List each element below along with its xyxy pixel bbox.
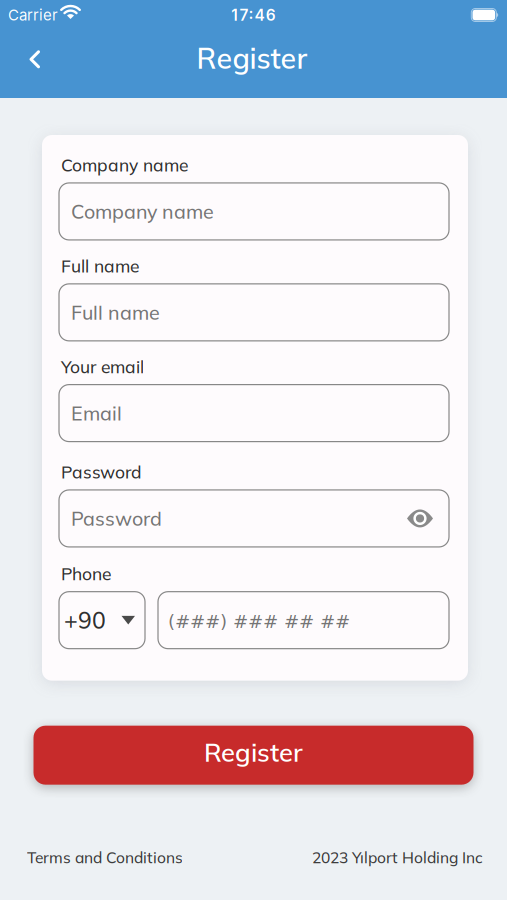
staticText: 17:46 bbox=[231, 6, 276, 24]
staticText: Register bbox=[196, 40, 307, 76]
staticText: Register bbox=[204, 736, 303, 768]
button[interactable]: Company name bbox=[59, 183, 449, 240]
staticText: Full name bbox=[61, 255, 139, 277]
staticText: (###) ### ## ## bbox=[168, 611, 350, 632]
staticText: Your email bbox=[61, 356, 144, 378]
staticText: Password bbox=[61, 461, 142, 483]
staticText: Terms and Conditions bbox=[27, 847, 183, 867]
staticText: Carrier bbox=[8, 6, 58, 24]
button[interactable]: Full name bbox=[59, 284, 449, 341]
button[interactable]: Register bbox=[33, 726, 473, 785]
staticText: +90 bbox=[64, 606, 106, 634]
button[interactable]: Back bbox=[0, 35, 61, 93]
button[interactable]: Email bbox=[59, 385, 449, 442]
staticText: Company name bbox=[61, 154, 188, 176]
staticText: Full name bbox=[71, 300, 160, 325]
staticText: Email bbox=[71, 401, 122, 425]
button[interactable]: Show password bbox=[407, 509, 449, 527]
button[interactable]: Password bbox=[59, 490, 449, 547]
button[interactable]: Country code +90 bbox=[59, 592, 145, 649]
staticText: Phone bbox=[61, 563, 111, 585]
button[interactable]: Terms and Conditions bbox=[27, 847, 183, 867]
staticText: Company name bbox=[71, 199, 214, 224]
staticText: Password bbox=[71, 506, 162, 531]
staticText: 2023 Yılport Holding Inc bbox=[312, 847, 483, 867]
button[interactable]: Phone number bbox=[158, 592, 449, 649]
